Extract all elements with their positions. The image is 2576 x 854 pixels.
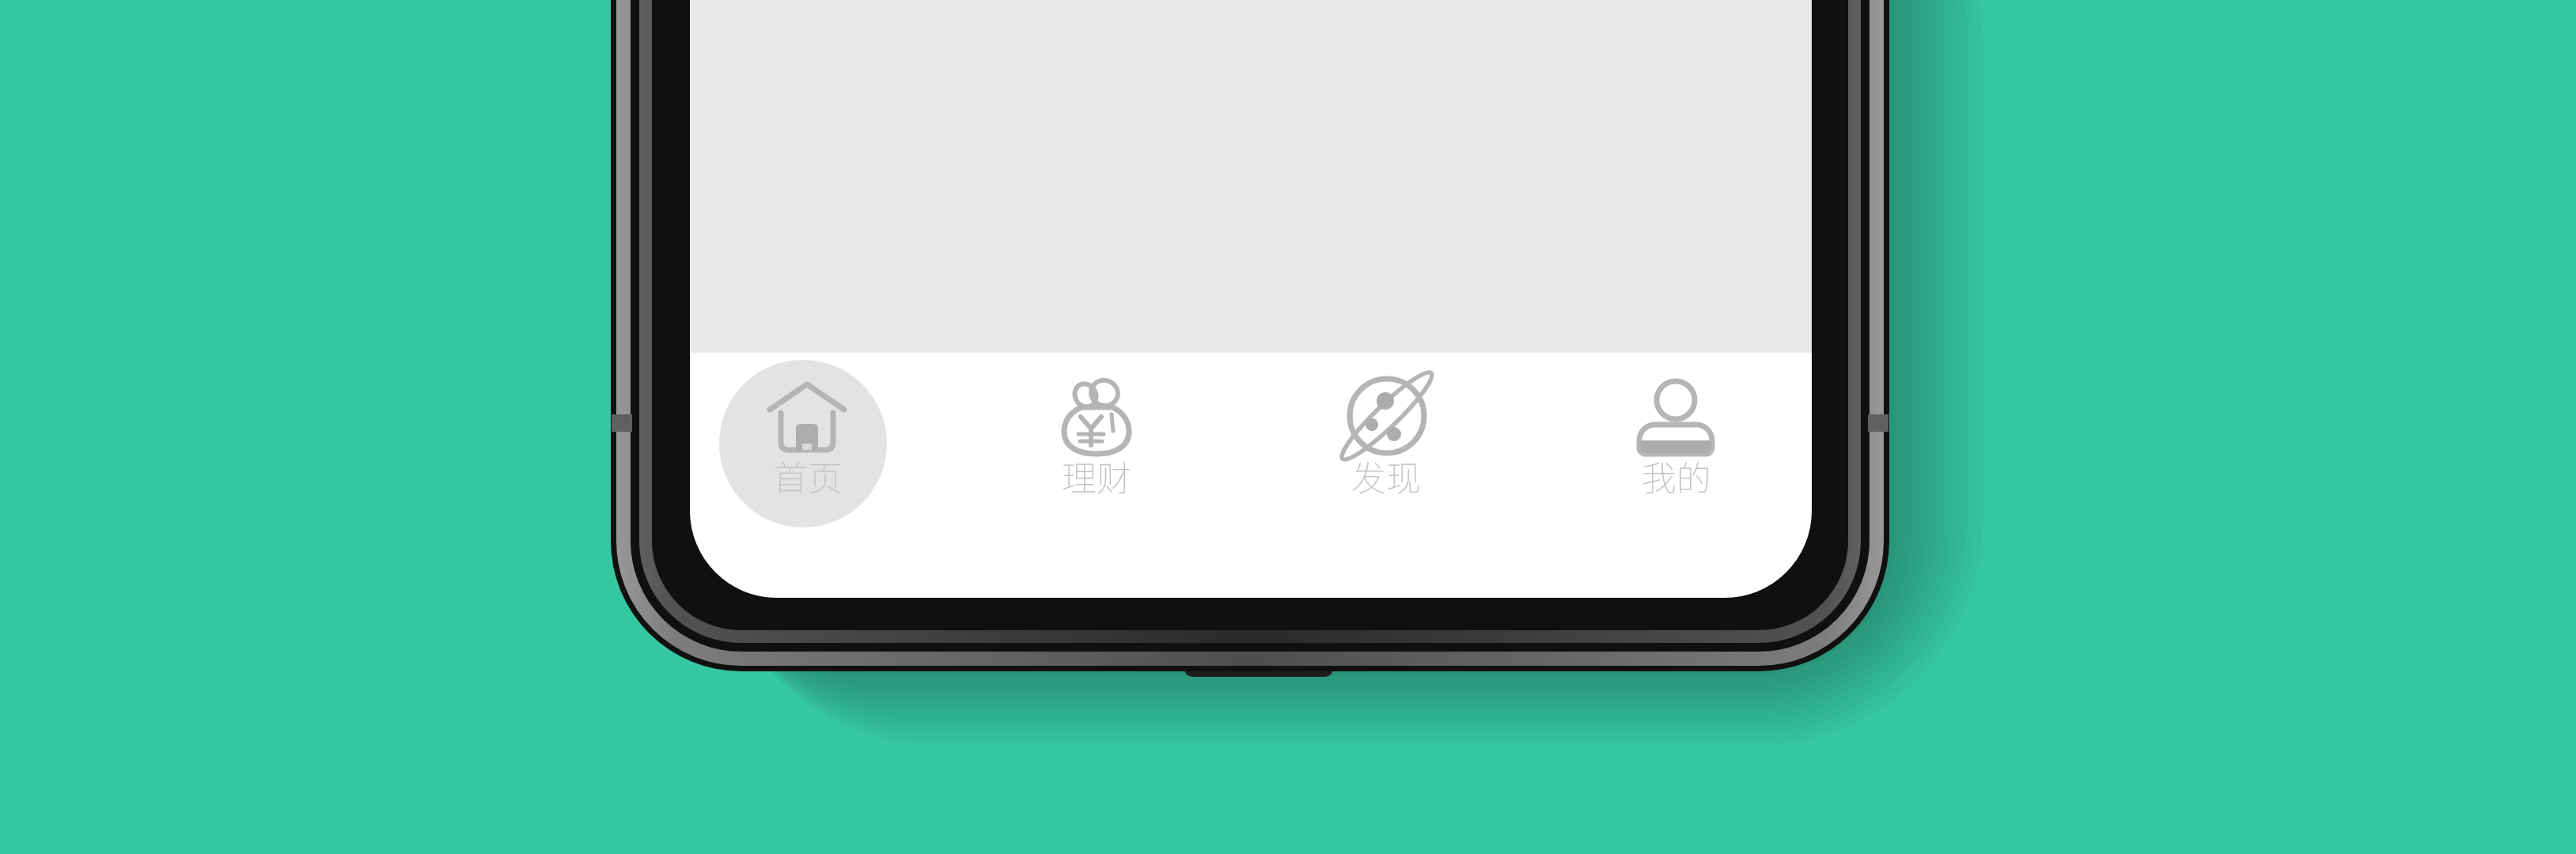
button[interactable] bbox=[697, 356, 919, 546]
staticText: 发现 bbox=[1351, 451, 1421, 495]
button[interactable] bbox=[986, 356, 1207, 546]
staticText: 我的 bbox=[1642, 451, 1711, 495]
staticText: 首页 bbox=[773, 451, 843, 495]
staticText: 理财 bbox=[1062, 451, 1131, 495]
button[interactable] bbox=[1275, 356, 1497, 546]
button[interactable] bbox=[1566, 356, 1787, 546]
